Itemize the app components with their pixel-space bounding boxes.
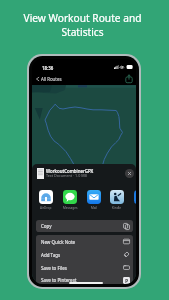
staticText: View Workout Route and Statistics xyxy=(12,11,153,39)
button[interactable]: Share xyxy=(125,74,133,83)
button[interactable]: Close xyxy=(125,169,134,178)
staticText: Copy xyxy=(41,223,52,229)
button[interactable]: AirDrop xyxy=(36,190,56,210)
staticText: AirDrop xyxy=(40,206,52,210)
staticText: Save to Pinterest xyxy=(41,277,77,283)
staticText: Kindle xyxy=(112,206,122,210)
staticText: P xyxy=(125,277,129,284)
staticText: Mail xyxy=(91,206,98,210)
button[interactable]: Mail xyxy=(84,190,104,210)
staticText: All Routes xyxy=(41,76,62,82)
staticText: WorkoutCombinerGPX xyxy=(46,168,94,174)
button[interactable]: New Quick Note xyxy=(36,235,133,248)
button[interactable]: All Routes xyxy=(36,75,62,83)
button[interactable]: Save to Pinterest xyxy=(36,274,133,284)
button[interactable]: Copy xyxy=(36,220,133,232)
button[interactable]: Add Tags xyxy=(36,248,133,261)
staticText: Add Tags xyxy=(41,252,61,258)
staticText: New Quick Note xyxy=(41,239,76,245)
staticText: Text Document · 1.0 MB xyxy=(46,173,87,178)
staticText: 18:36 xyxy=(42,65,54,71)
button[interactable]: Messages xyxy=(60,190,80,210)
staticText: Save to Files xyxy=(41,265,67,271)
button[interactable]: Save to Files xyxy=(36,261,133,274)
button[interactable]: Kindle xyxy=(107,190,127,210)
staticText: Messages xyxy=(63,206,78,210)
